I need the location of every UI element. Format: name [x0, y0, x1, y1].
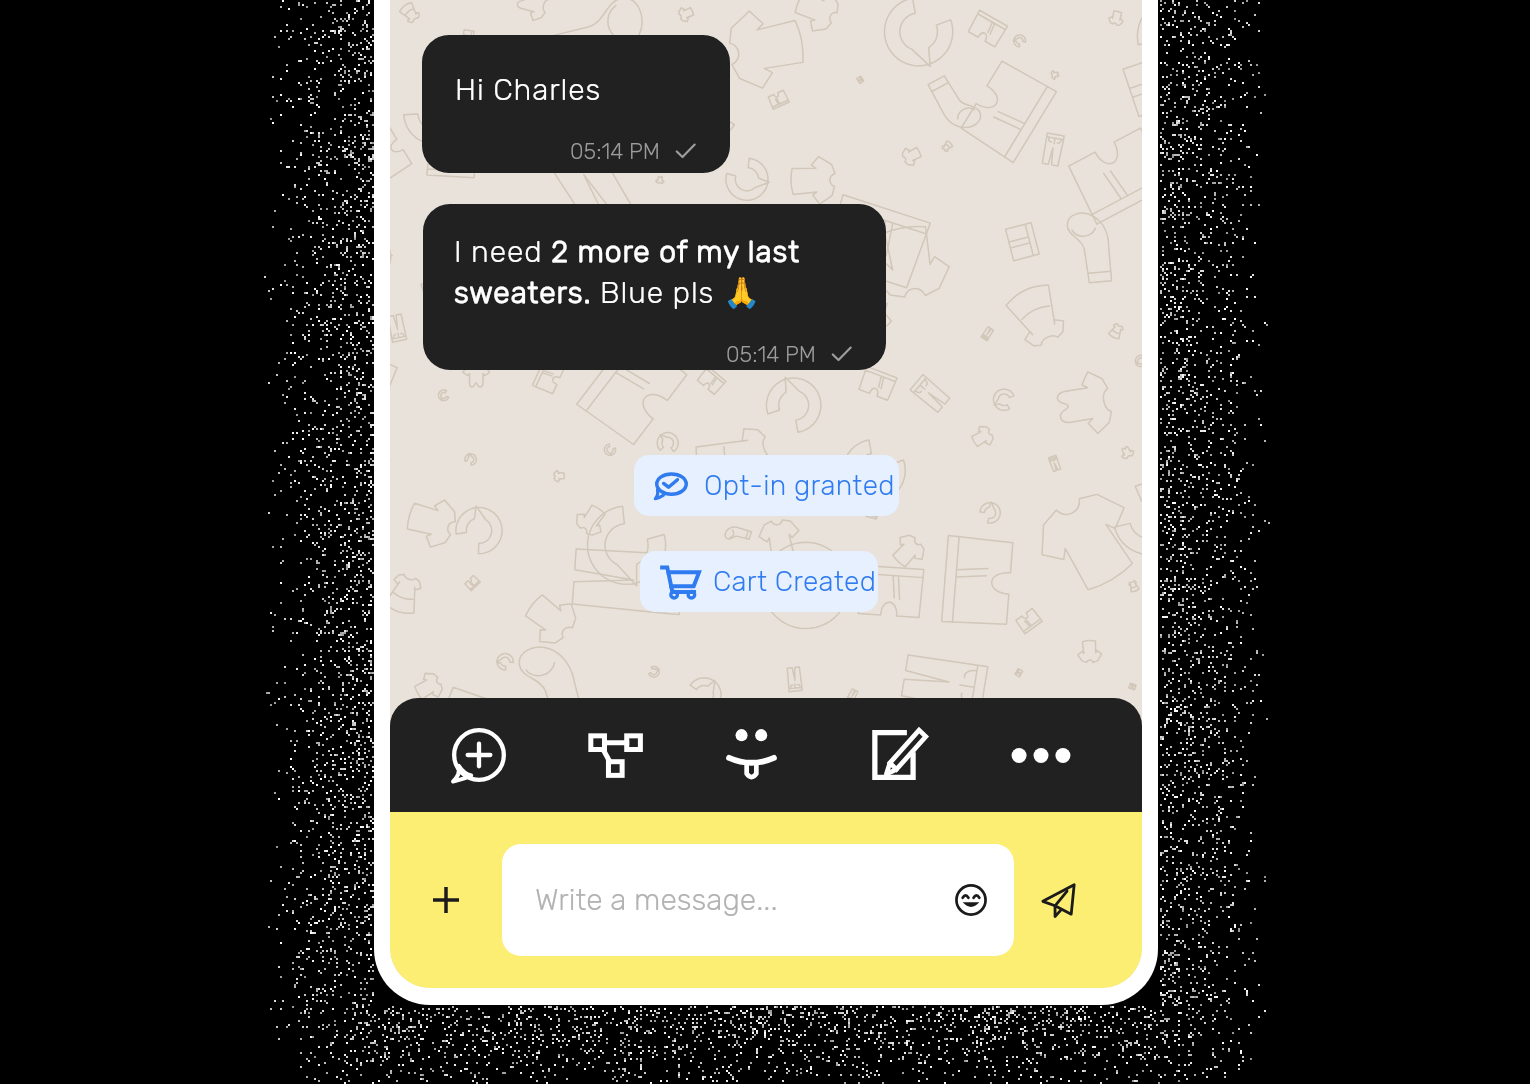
- button[interactable]: Hi Charles: [422, 35, 730, 173]
- staticText: Cart Created: [713, 565, 877, 598]
- staticText: I need 2 more of my last sweaters. Blue …: [454, 234, 814, 311]
- staticText: Write a message...: [535, 882, 778, 918]
- button[interactable]: Opt-in granted: [634, 455, 899, 516]
- button[interactable]: More options: [1011, 725, 1071, 785]
- button[interactable]: Compose: [868, 725, 928, 785]
- button[interactable]: Add attachment: [421, 875, 471, 925]
- button[interactable]: Write a message...: [502, 844, 1014, 956]
- button[interactable]: New chat: [449, 725, 509, 785]
- staticText: Opt-in granted: [704, 469, 895, 502]
- staticText: Hi Charles: [455, 72, 602, 108]
- button[interactable]: Cart Created: [640, 551, 878, 612]
- staticText: 05:14 PM: [726, 341, 816, 367]
- button[interactable]: Flows: [585, 725, 645, 785]
- button[interactable]: Stickers: [721, 725, 781, 785]
- staticText: 05:14 PM: [570, 138, 660, 164]
- button[interactable]: Send: [1030, 872, 1086, 928]
- button[interactable]: I need 2 more of my last sweaters. Blue …: [423, 204, 886, 370]
